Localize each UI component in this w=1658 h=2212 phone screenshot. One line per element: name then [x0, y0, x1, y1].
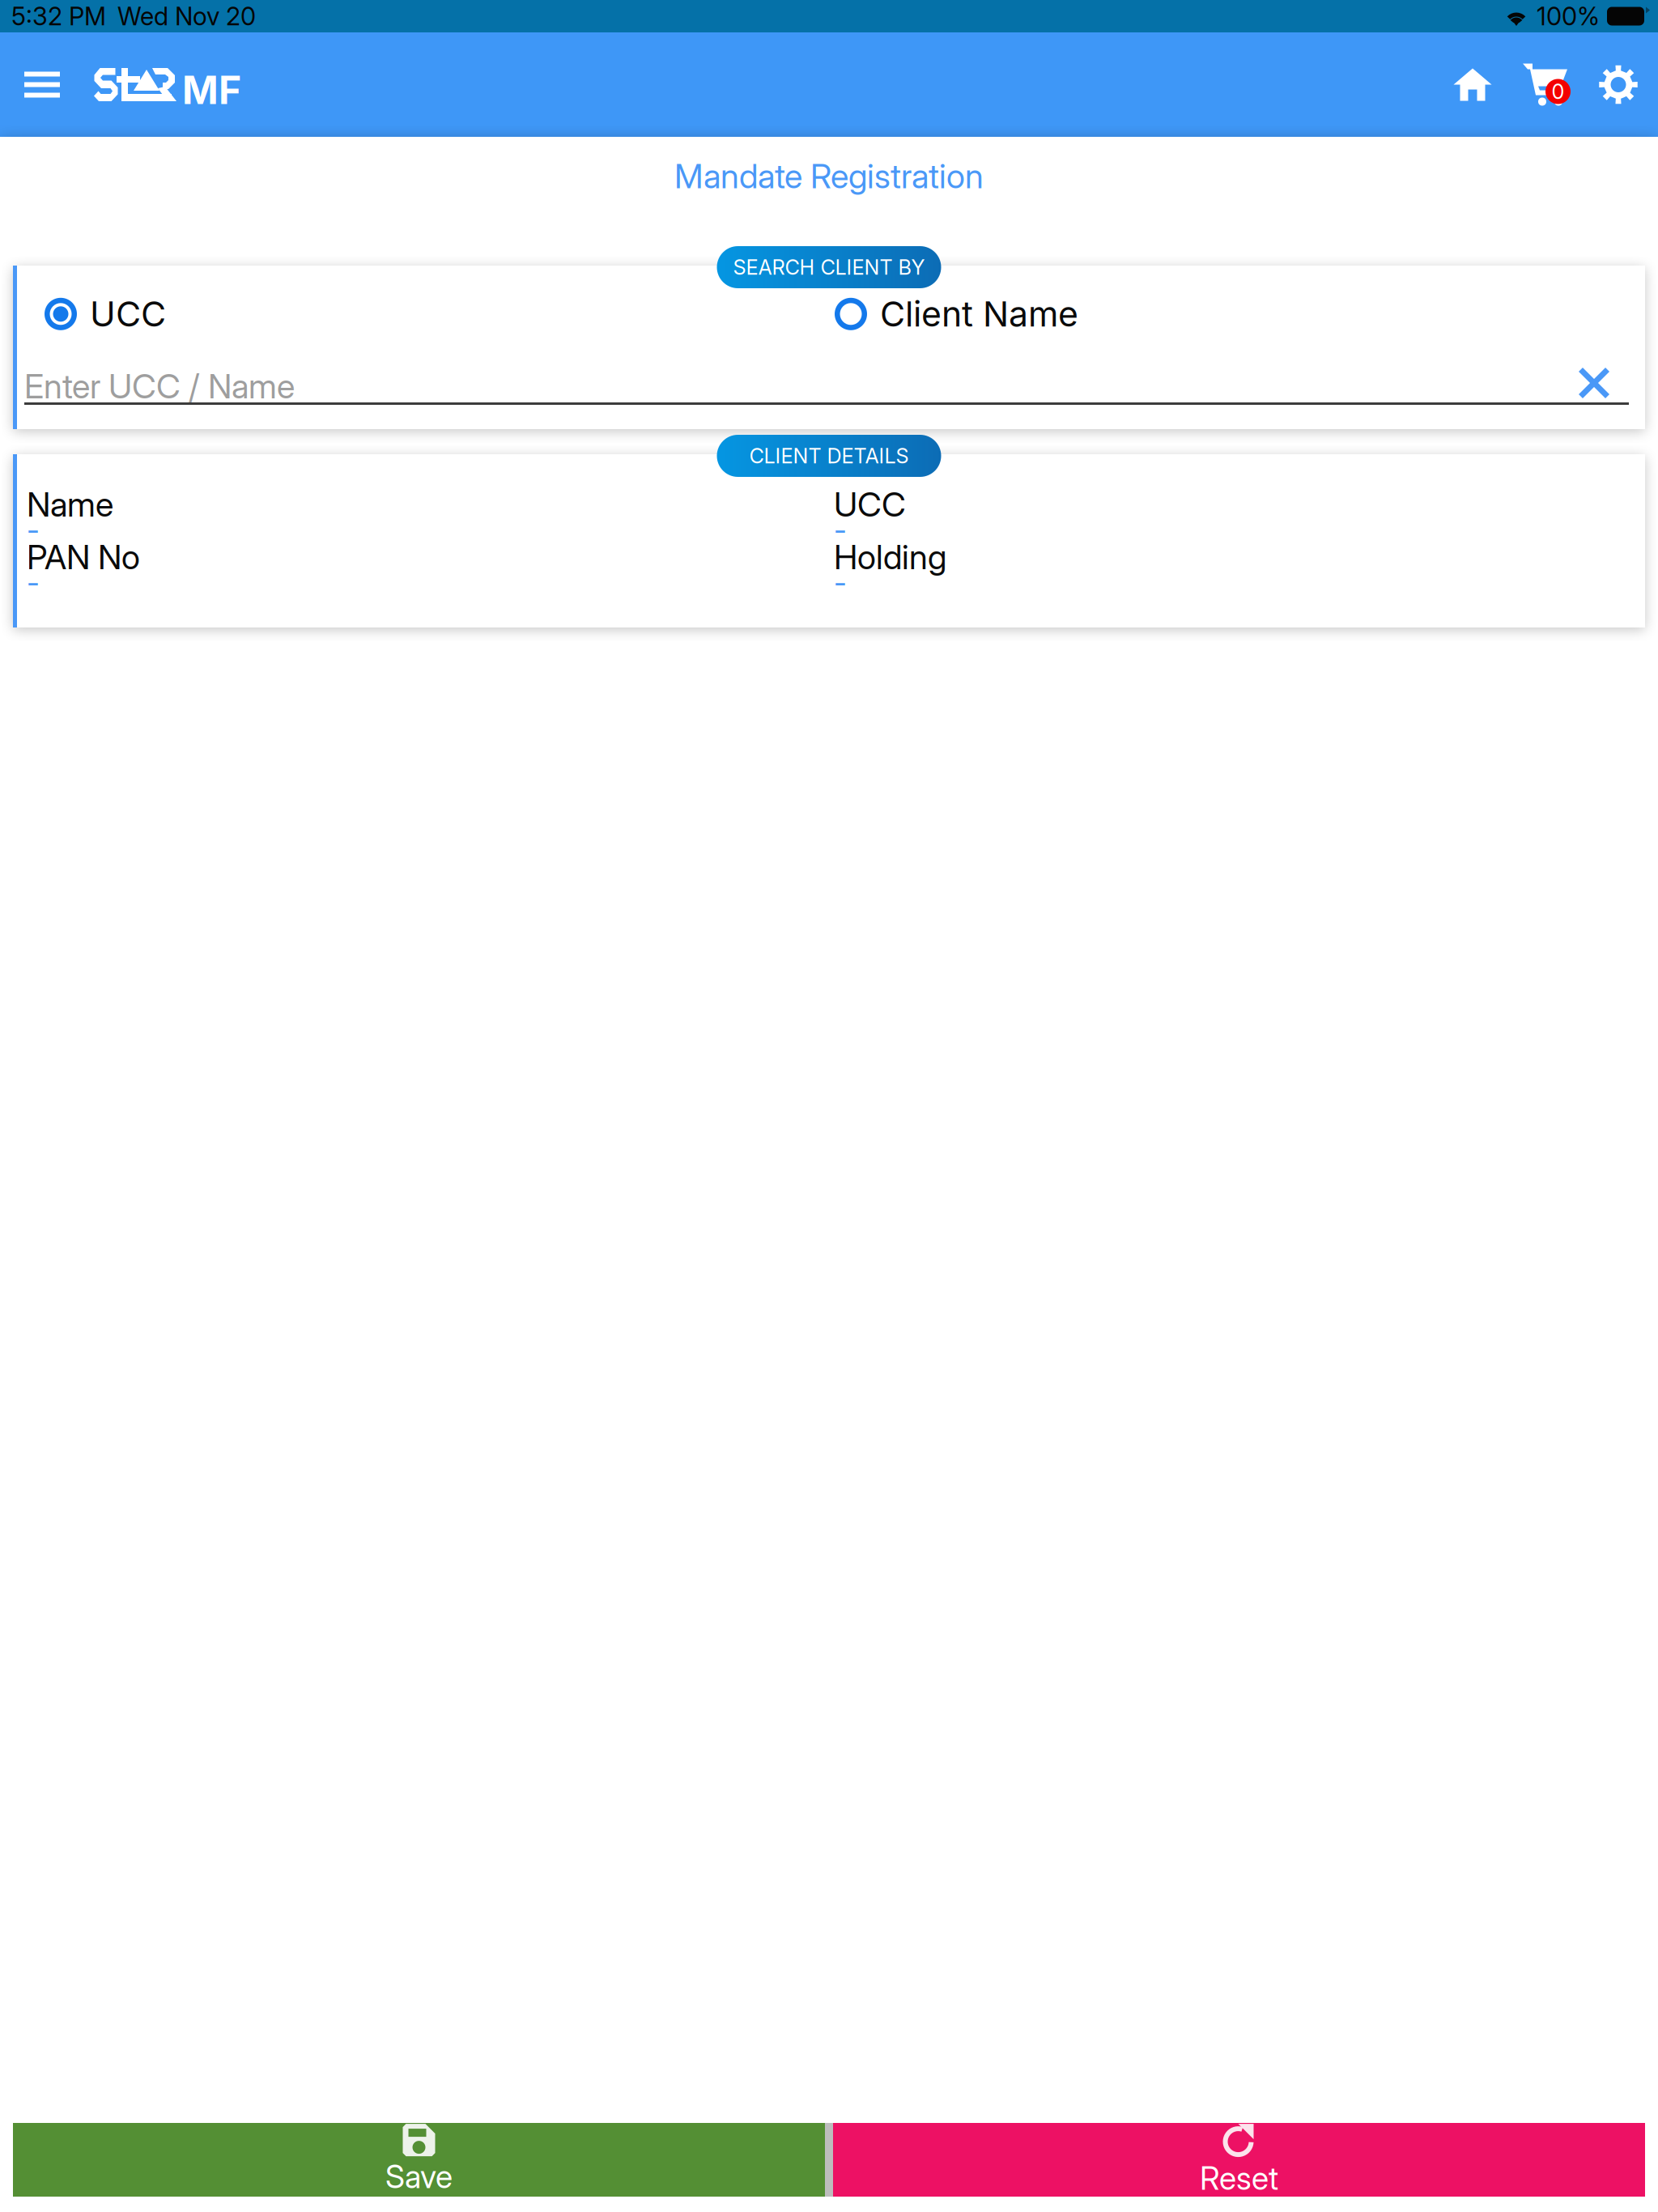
staticText: 0	[1552, 79, 1564, 104]
staticText: Client Name	[880, 293, 1078, 335]
staticText: -	[834, 512, 847, 547]
button[interactable]: Cart	[1509, 32, 1582, 137]
button[interactable]: Client Name	[835, 293, 1078, 335]
staticText: 100%	[1537, 1, 1600, 31]
staticText: -	[27, 564, 40, 600]
button[interactable]: Reset	[833, 2123, 1645, 2197]
staticText: MF	[182, 66, 241, 113]
staticText: Wed Nov 20	[117, 1, 256, 31]
button[interactable]: Menu	[3, 32, 81, 137]
staticText: Save	[385, 2158, 453, 2196]
staticText: Holding	[834, 537, 946, 577]
staticText: Name	[27, 484, 113, 525]
staticText: SEARCH CLIENT BY	[733, 255, 925, 280]
button[interactable]: Save	[13, 2123, 825, 2197]
staticText: Enter UCC / Name	[24, 366, 295, 406]
button[interactable]: Home	[1436, 32, 1509, 137]
button[interactable]: UCC	[45, 293, 166, 335]
staticText: Reset	[1200, 2159, 1278, 2197]
staticText: UCC	[834, 484, 906, 525]
staticText: CLIENT DETAILS	[749, 443, 909, 468]
button[interactable]: Clear	[1562, 355, 1626, 411]
staticText: PAN No	[27, 537, 140, 577]
button[interactable]: Settings	[1582, 32, 1655, 137]
staticText: -	[27, 512, 40, 547]
staticText: UCC	[90, 293, 166, 335]
staticText: 5:32 PM	[11, 1, 106, 31]
staticText: -	[834, 564, 847, 600]
staticText: Mandate Registration	[674, 156, 984, 196]
